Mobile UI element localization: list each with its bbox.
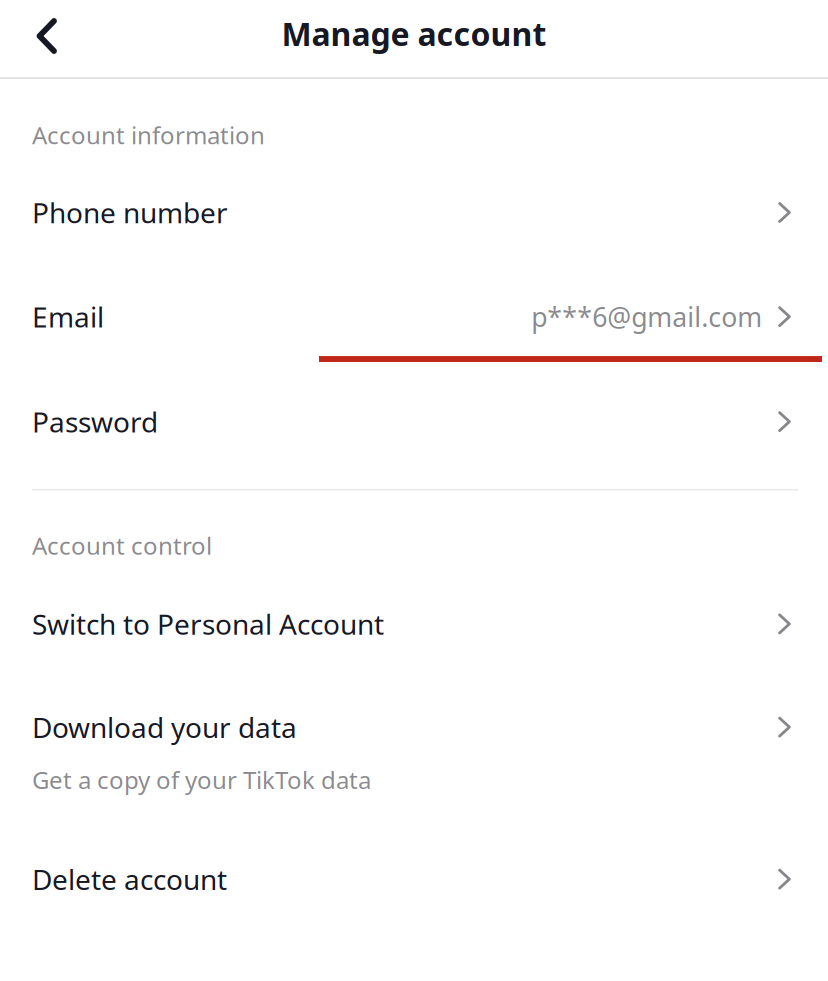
staticText: Phone number xyxy=(32,194,228,231)
button[interactable]: Switch to Personal Account xyxy=(0,561,828,668)
staticText: Get a copy of your TikTok data xyxy=(32,764,371,796)
staticText: p***6@gmail.com xyxy=(531,299,762,334)
staticText: Email xyxy=(32,298,104,335)
button[interactable]: Delete account xyxy=(0,821,828,924)
button[interactable]: Email xyxy=(0,256,828,357)
staticText: Account information xyxy=(32,119,265,151)
staticText: Switch to Personal Account xyxy=(32,605,384,642)
staticText: Download your data xyxy=(32,708,297,746)
staticText: Delete account xyxy=(32,860,227,898)
button[interactable]: Phone number xyxy=(0,151,828,256)
button[interactable]: Password xyxy=(0,362,828,465)
button[interactable]: Download your data xyxy=(0,668,828,822)
staticText: Account control xyxy=(32,529,212,561)
button[interactable]: Back xyxy=(20,9,74,70)
staticText: Manage account xyxy=(281,12,546,55)
staticText: Password xyxy=(32,403,158,440)
